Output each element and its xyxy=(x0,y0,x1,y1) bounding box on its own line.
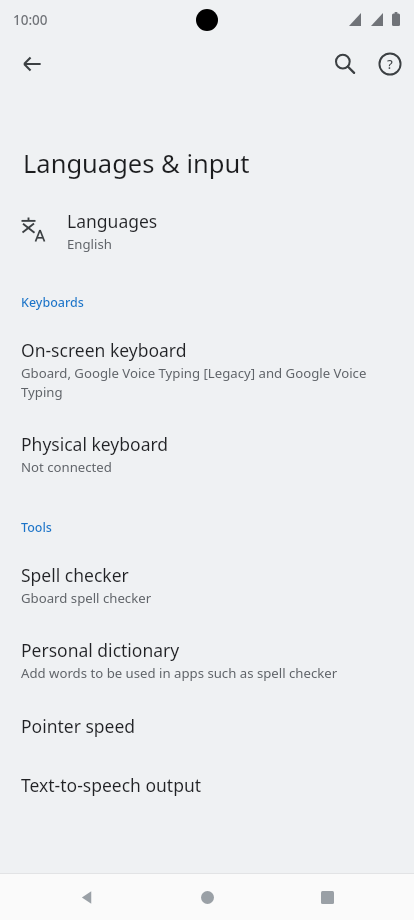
staticText: Languages xyxy=(67,210,158,233)
staticText: Keyboards xyxy=(21,294,84,310)
staticText: Gboard, Google Voice Typing [Legacy] and… xyxy=(21,363,394,401)
button[interactable]: Personal dictionary xyxy=(0,607,414,682)
button[interactable]: Physical keyboard xyxy=(0,401,414,476)
button[interactable]: Back xyxy=(63,874,111,920)
staticText: Spell checker xyxy=(21,564,129,587)
staticText: English xyxy=(67,234,112,253)
staticText: Personal dictionary xyxy=(21,639,180,662)
button[interactable]: Home xyxy=(183,874,231,920)
staticText: Text-to-speech output xyxy=(21,774,202,797)
button[interactable]: Back xyxy=(8,40,56,88)
staticText: ? xyxy=(387,56,393,73)
staticText: On-screen keyboard xyxy=(21,339,187,362)
button[interactable]: Recent apps xyxy=(303,874,351,920)
button[interactable]: Spell checker xyxy=(0,535,414,607)
staticText: Tools xyxy=(21,519,52,535)
button[interactable]: Help xyxy=(366,40,414,88)
staticText: Gboard spell checker xyxy=(21,588,152,607)
button[interactable]: Languages xyxy=(0,180,414,253)
staticText: Add words to be used in apps such as spe… xyxy=(21,663,338,682)
button[interactable]: Search xyxy=(321,40,369,88)
staticText: Not connected xyxy=(21,457,112,476)
staticText: 10:00 xyxy=(13,11,48,28)
button[interactable]: On-screen keyboard xyxy=(0,310,414,401)
staticText: Pointer speed xyxy=(21,715,136,738)
button[interactable]: Pointer speed xyxy=(0,682,414,738)
staticText: Physical keyboard xyxy=(21,433,169,456)
button[interactable]: Text-to-speech output xyxy=(0,738,414,797)
staticText: Languages & input xyxy=(23,148,250,180)
